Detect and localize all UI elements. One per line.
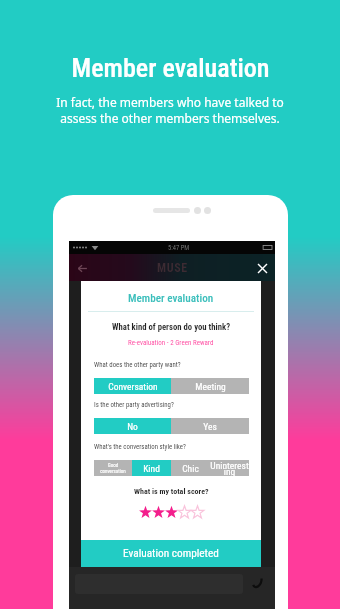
button[interactable]: Meeting bbox=[171, 378, 249, 394]
staticText: Good conversation bbox=[100, 462, 126, 474]
button[interactable]: Chic bbox=[171, 460, 210, 476]
staticText: What is my total score? bbox=[134, 487, 209, 496]
staticText: Chic bbox=[182, 463, 199, 474]
button[interactable]: Uninteresting bbox=[210, 460, 249, 476]
staticText: Is the other party advertising? bbox=[94, 401, 174, 409]
button[interactable]: Kind bbox=[132, 460, 171, 476]
staticText: Member evaluation bbox=[128, 292, 214, 305]
button[interactable]: Yes bbox=[171, 418, 249, 434]
staticText: Uninteresting bbox=[210, 460, 249, 476]
button[interactable]: Good conversation bbox=[94, 460, 132, 476]
staticText: What kind of person do you think? bbox=[112, 322, 231, 332]
button[interactable]: Conversation bbox=[94, 378, 171, 394]
staticText: MUSE bbox=[157, 261, 188, 275]
staticText: Kind bbox=[143, 463, 160, 474]
staticText: Yes bbox=[203, 421, 217, 432]
staticText: 5:47 PM bbox=[168, 244, 190, 252]
staticText: In fact, the members who have talked to … bbox=[56, 94, 284, 127]
button[interactable]: Back bbox=[72, 258, 92, 278]
button[interactable]: Call bbox=[249, 575, 267, 593]
staticText: Meeting bbox=[195, 381, 226, 392]
staticText: Member evaluation bbox=[71, 53, 270, 83]
staticText: Re-evaluation - 2 Green Reward bbox=[128, 339, 214, 347]
staticText: No bbox=[127, 421, 138, 432]
button[interactable]: No bbox=[94, 418, 171, 434]
staticText: Evaluation completed bbox=[123, 547, 219, 560]
staticText: Conversation bbox=[108, 381, 158, 392]
button[interactable]: Close bbox=[254, 260, 270, 276]
button[interactable]: Evaluation completed bbox=[81, 540, 261, 567]
staticText: What's the conversation style like? bbox=[94, 443, 186, 451]
staticText: What does the other party want? bbox=[94, 361, 181, 369]
